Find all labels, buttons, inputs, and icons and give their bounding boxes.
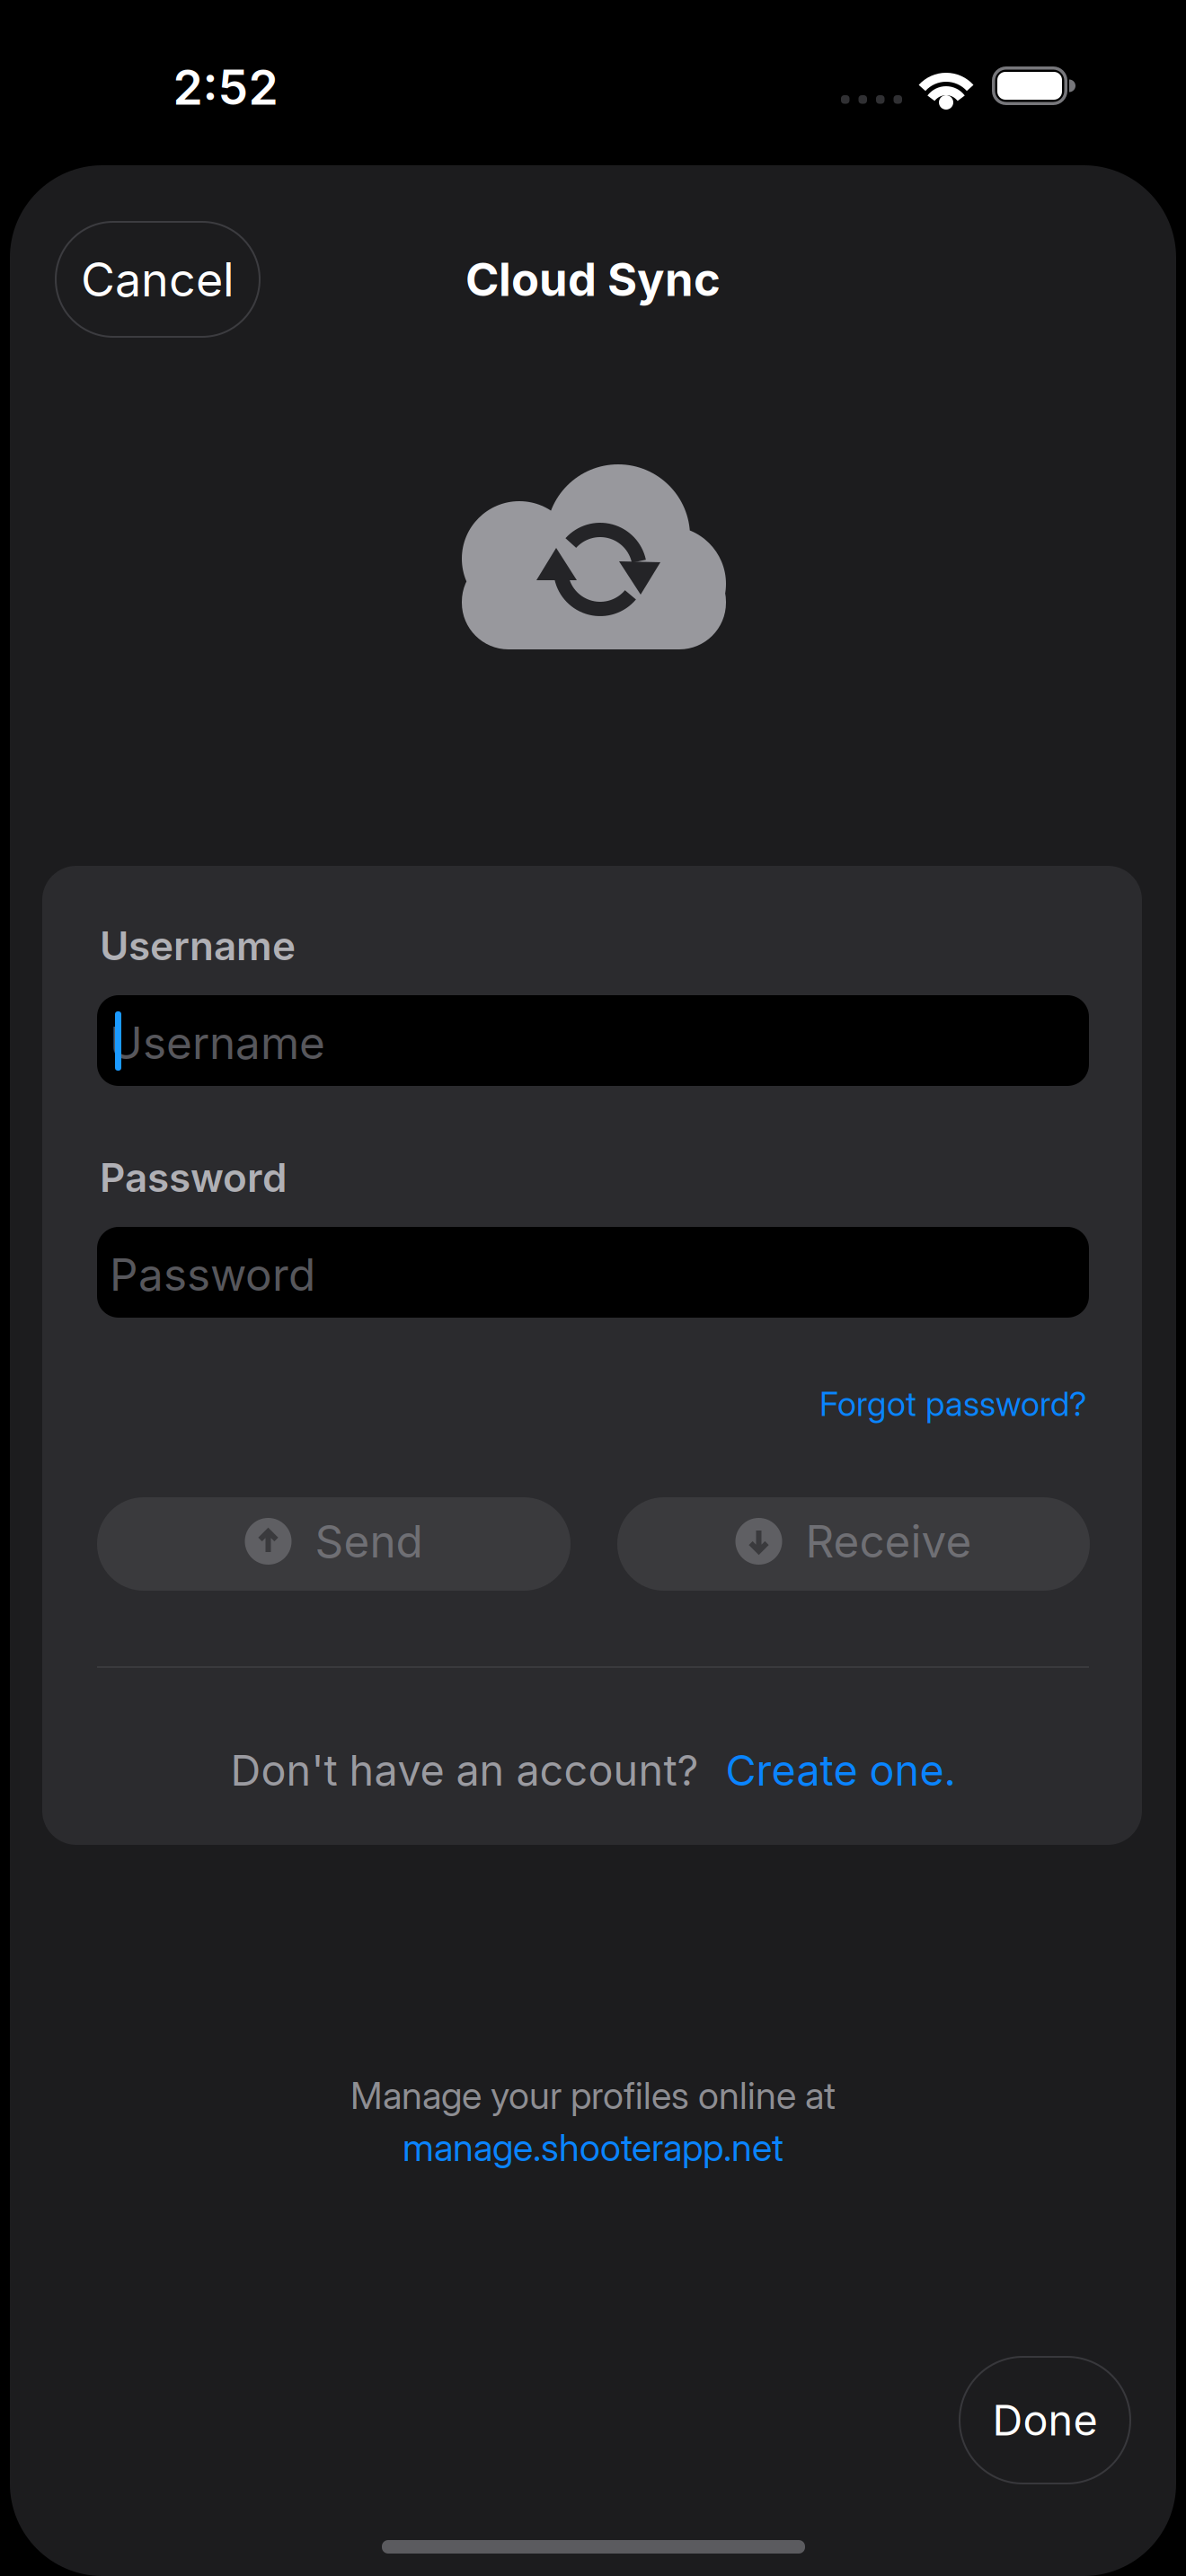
button[interactable]: Password (97, 1227, 1089, 1318)
staticText: manage.shooterapp.net (403, 2126, 783, 2169)
staticText: Send (315, 1515, 423, 1567)
button[interactable]: Cancel (55, 221, 261, 338)
staticText: Receive (805, 1515, 972, 1567)
staticText: Manage your profiles online at (350, 2074, 836, 2117)
button[interactable]: Receive (617, 1497, 1090, 1591)
staticText: Username (110, 1017, 325, 1069)
staticText: Done (992, 2395, 1097, 2445)
staticText: Username (100, 922, 296, 969)
staticText: Forgot password? (819, 1384, 1086, 1424)
button[interactable]: manage.shooterapp.net (403, 2126, 783, 2169)
staticText: Create one. (726, 1746, 956, 1795)
staticText: Cancel (81, 252, 235, 307)
staticText: Don't have an account? (230, 1746, 699, 1795)
staticText: Password (100, 1154, 287, 1201)
button[interactable]: Forgot password? (819, 1384, 1086, 1424)
button[interactable]: Done (959, 2356, 1131, 2484)
staticText: Password (110, 1248, 315, 1301)
button[interactable]: Username (97, 995, 1089, 1086)
staticText: 2:52 (173, 59, 278, 115)
staticText: Cloud Sync (465, 252, 721, 306)
button[interactable]: Create one. (726, 1746, 956, 1795)
button[interactable]: Send (97, 1497, 571, 1591)
